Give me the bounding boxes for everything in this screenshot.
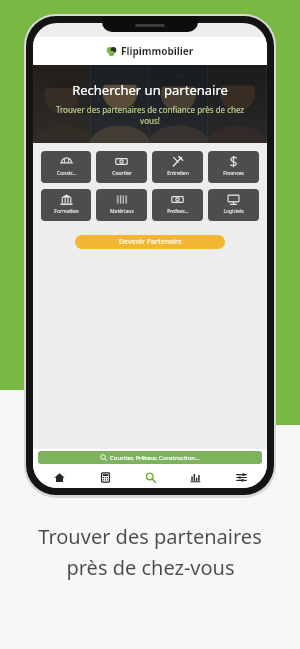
staticText: Formation	[54, 208, 79, 215]
button[interactable]: Finances	[208, 151, 259, 183]
button[interactable]: Constr...	[41, 151, 91, 183]
staticText: Trouver des partenaires de confiance prè…	[47, 104, 253, 127]
staticText: Rechercher un partenaire	[72, 81, 228, 99]
staticText: Courtier	[112, 170, 132, 177]
button[interactable]: Filters	[222, 466, 260, 488]
staticText: Constr...	[57, 170, 76, 177]
button[interactable]: Search	[131, 466, 169, 488]
staticText: Courtier, Prêteur, Construction...	[110, 454, 200, 462]
staticText: Finances	[223, 170, 244, 177]
staticText: près de chez-vous	[66, 554, 235, 581]
button[interactable]: Devenir Partenaire	[75, 235, 225, 249]
button[interactable]: Logiciels	[208, 189, 259, 221]
button[interactable]: Formation	[41, 189, 91, 221]
staticText: Matériaux	[110, 208, 134, 215]
staticText: Entretien	[167, 170, 189, 177]
button[interactable]: Courtier, Prêteur, Construction...	[38, 451, 262, 464]
button[interactable]: Home	[40, 466, 78, 488]
button[interactable]: Entretien	[152, 151, 203, 183]
button[interactable]: Courtier	[96, 151, 147, 183]
button[interactable]: Matériaux	[96, 189, 147, 221]
button[interactable]: Calculator	[86, 466, 124, 488]
staticText: Flipimmobilier	[121, 44, 194, 58]
button[interactable]: Statistics	[176, 466, 214, 488]
staticText: Trouver des partenaires	[38, 523, 262, 550]
staticText: Devenir Partenaire	[119, 237, 182, 247]
staticText: Profess...	[167, 208, 189, 215]
staticText: Logiciels	[223, 208, 244, 215]
button[interactable]: Profess...	[152, 189, 203, 221]
